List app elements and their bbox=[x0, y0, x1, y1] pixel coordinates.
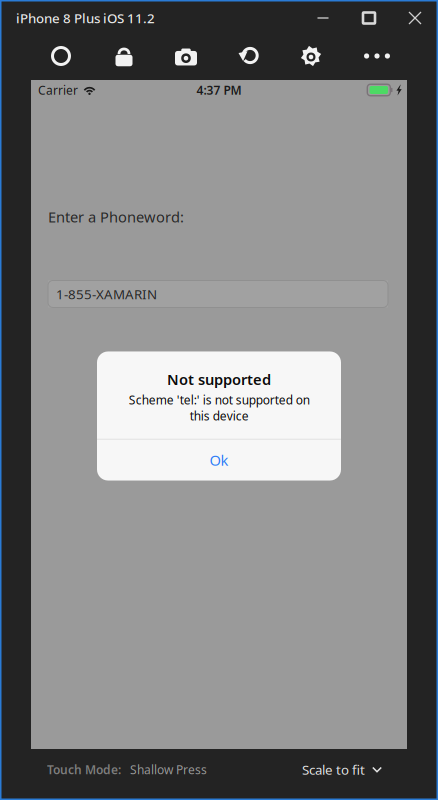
button[interactable]: Close bbox=[392, 0, 438, 36]
staticText: 4:37 PM bbox=[196, 82, 241, 98]
button[interactable]: Lock bbox=[102, 36, 146, 76]
button[interactable]: Rotate bbox=[228, 36, 272, 76]
staticText: Scheme 'tel:' is not supported on this d… bbox=[128, 392, 309, 424]
button[interactable]: More options bbox=[355, 36, 399, 76]
staticText: Scale to fit bbox=[302, 761, 365, 778]
staticText: iPhone 8 Plus iOS 11.2 bbox=[16, 9, 155, 27]
staticText: Touch Mode: bbox=[47, 761, 121, 777]
staticText: Shallow Press bbox=[130, 761, 207, 777]
button[interactable]: Maximize bbox=[346, 0, 392, 36]
button[interactable]: Home bbox=[39, 36, 83, 76]
staticText: Enter a Phoneword: bbox=[48, 207, 184, 226]
staticText: Ok bbox=[209, 450, 228, 470]
staticText: Carrier bbox=[38, 82, 78, 98]
button[interactable]: Screenshot bbox=[164, 36, 208, 76]
button[interactable]: Scale to fit bbox=[298, 756, 386, 783]
button[interactable]: Ok bbox=[97, 439, 341, 480]
staticText: Not supported bbox=[167, 369, 271, 389]
staticText: 1-855-XAMARIN bbox=[56, 285, 157, 303]
button[interactable]: Settings bbox=[289, 36, 333, 76]
button[interactable]: Minimize bbox=[300, 0, 346, 36]
